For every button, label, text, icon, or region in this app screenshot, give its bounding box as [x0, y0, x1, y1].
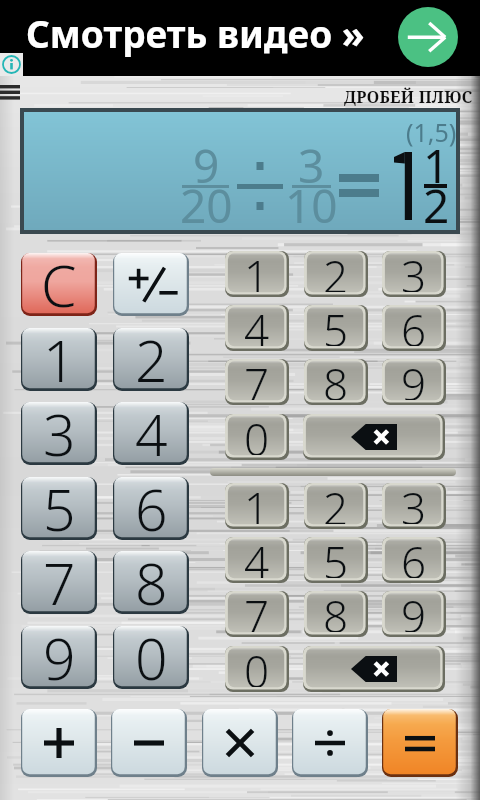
button[interactable]: 7 [21, 551, 97, 614]
staticText: 3 [43, 395, 76, 458]
button[interactable]: 3 [382, 483, 446, 529]
staticText: 1 [244, 478, 270, 524]
button[interactable]: 2 [304, 483, 368, 529]
staticText: 2 [135, 321, 168, 384]
button[interactable]: C [21, 253, 97, 316]
button[interactable]: 1 [225, 251, 289, 297]
staticText: 5 [323, 532, 349, 578]
button[interactable]: Multiply [202, 709, 278, 777]
button[interactable]: Backspace [303, 646, 445, 692]
button[interactable]: 9 [382, 591, 446, 637]
staticText: 6 [401, 532, 427, 578]
staticText: 0 [244, 641, 270, 687]
button[interactable]: Equals [382, 709, 458, 777]
staticText: 7 [43, 544, 76, 607]
button[interactable]: 3 [382, 251, 446, 297]
staticText: 2 [423, 174, 450, 237]
button[interactable]: Minus [111, 709, 187, 777]
staticText: 9 [401, 354, 427, 400]
staticText: 5 [43, 470, 76, 533]
button[interactable]: 0 [225, 646, 289, 692]
staticText: 4 [244, 300, 270, 346]
staticText: 6 [135, 470, 168, 533]
button[interactable]: 5 [304, 537, 368, 583]
staticText: 7 [244, 354, 270, 400]
staticText: C [41, 246, 77, 309]
staticText: 1 [244, 246, 270, 292]
button[interactable]: 8 [304, 359, 368, 405]
button[interactable]: Advertisement info [0, 53, 23, 76]
staticText: 20 [180, 174, 233, 237]
staticText: 2 [323, 478, 349, 524]
staticText: 9 [401, 586, 427, 632]
staticText: 1 [43, 321, 76, 384]
staticText: 2 [323, 246, 349, 292]
staticText: (1,5) [406, 115, 457, 149]
button[interactable]: 6 [113, 477, 189, 540]
staticText: 1 [423, 134, 450, 197]
button[interactable]: 0 [113, 626, 189, 689]
button[interactable]: Divide [292, 709, 368, 777]
button[interactable]: 1 [21, 328, 97, 391]
button[interactable]: 1 [225, 483, 289, 529]
button[interactable]: Backspace [303, 414, 445, 460]
button[interactable]: 5 [304, 305, 368, 351]
staticText: 8 [135, 544, 168, 607]
staticText: 4 [135, 395, 168, 458]
staticText: 3 [298, 134, 325, 197]
button[interactable]: 4 [225, 305, 289, 351]
button[interactable]: 7 [225, 591, 289, 637]
button[interactable]: Plus minus [113, 253, 189, 316]
button[interactable]: 2 [113, 328, 189, 391]
staticText: 10 [285, 174, 338, 237]
staticText: 0 [135, 619, 168, 682]
staticText: 9 [43, 619, 76, 682]
button[interactable]: Menu [0, 85, 20, 101]
button[interactable]: 0 [225, 414, 289, 460]
button[interactable]: 9 [382, 359, 446, 405]
button[interactable]: 4 [225, 537, 289, 583]
button[interactable]: 9 [21, 626, 97, 689]
button[interactable]: 6 [382, 305, 446, 351]
button[interactable]: Смотреть видео » [0, 0, 480, 76]
staticText: Смотреть видео » [26, 8, 365, 58]
button[interactable]: 2 [304, 251, 368, 297]
staticText: ДРОБЕЙ ПЛЮС [344, 86, 473, 108]
button[interactable]: 4 [113, 402, 189, 465]
staticText: 5 [323, 300, 349, 346]
staticText: 3 [401, 478, 427, 524]
staticText: 8 [323, 354, 349, 400]
staticText: 4 [244, 532, 270, 578]
button[interactable]: 5 [21, 477, 97, 540]
staticText: 6 [401, 300, 427, 346]
staticText: 3 [401, 246, 427, 292]
staticText: 8 [323, 586, 349, 632]
staticText: 9 [193, 134, 220, 197]
button[interactable]: Plus [21, 709, 97, 777]
button[interactable]: Open advertisement [398, 7, 458, 67]
button[interactable]: 3 [21, 402, 97, 465]
button[interactable]: 8 [304, 591, 368, 637]
staticText: 7 [244, 586, 270, 632]
staticText: 0 [244, 409, 270, 455]
button[interactable]: 6 [382, 537, 446, 583]
button[interactable]: 7 [225, 359, 289, 405]
button[interactable]: 8 [113, 551, 189, 614]
